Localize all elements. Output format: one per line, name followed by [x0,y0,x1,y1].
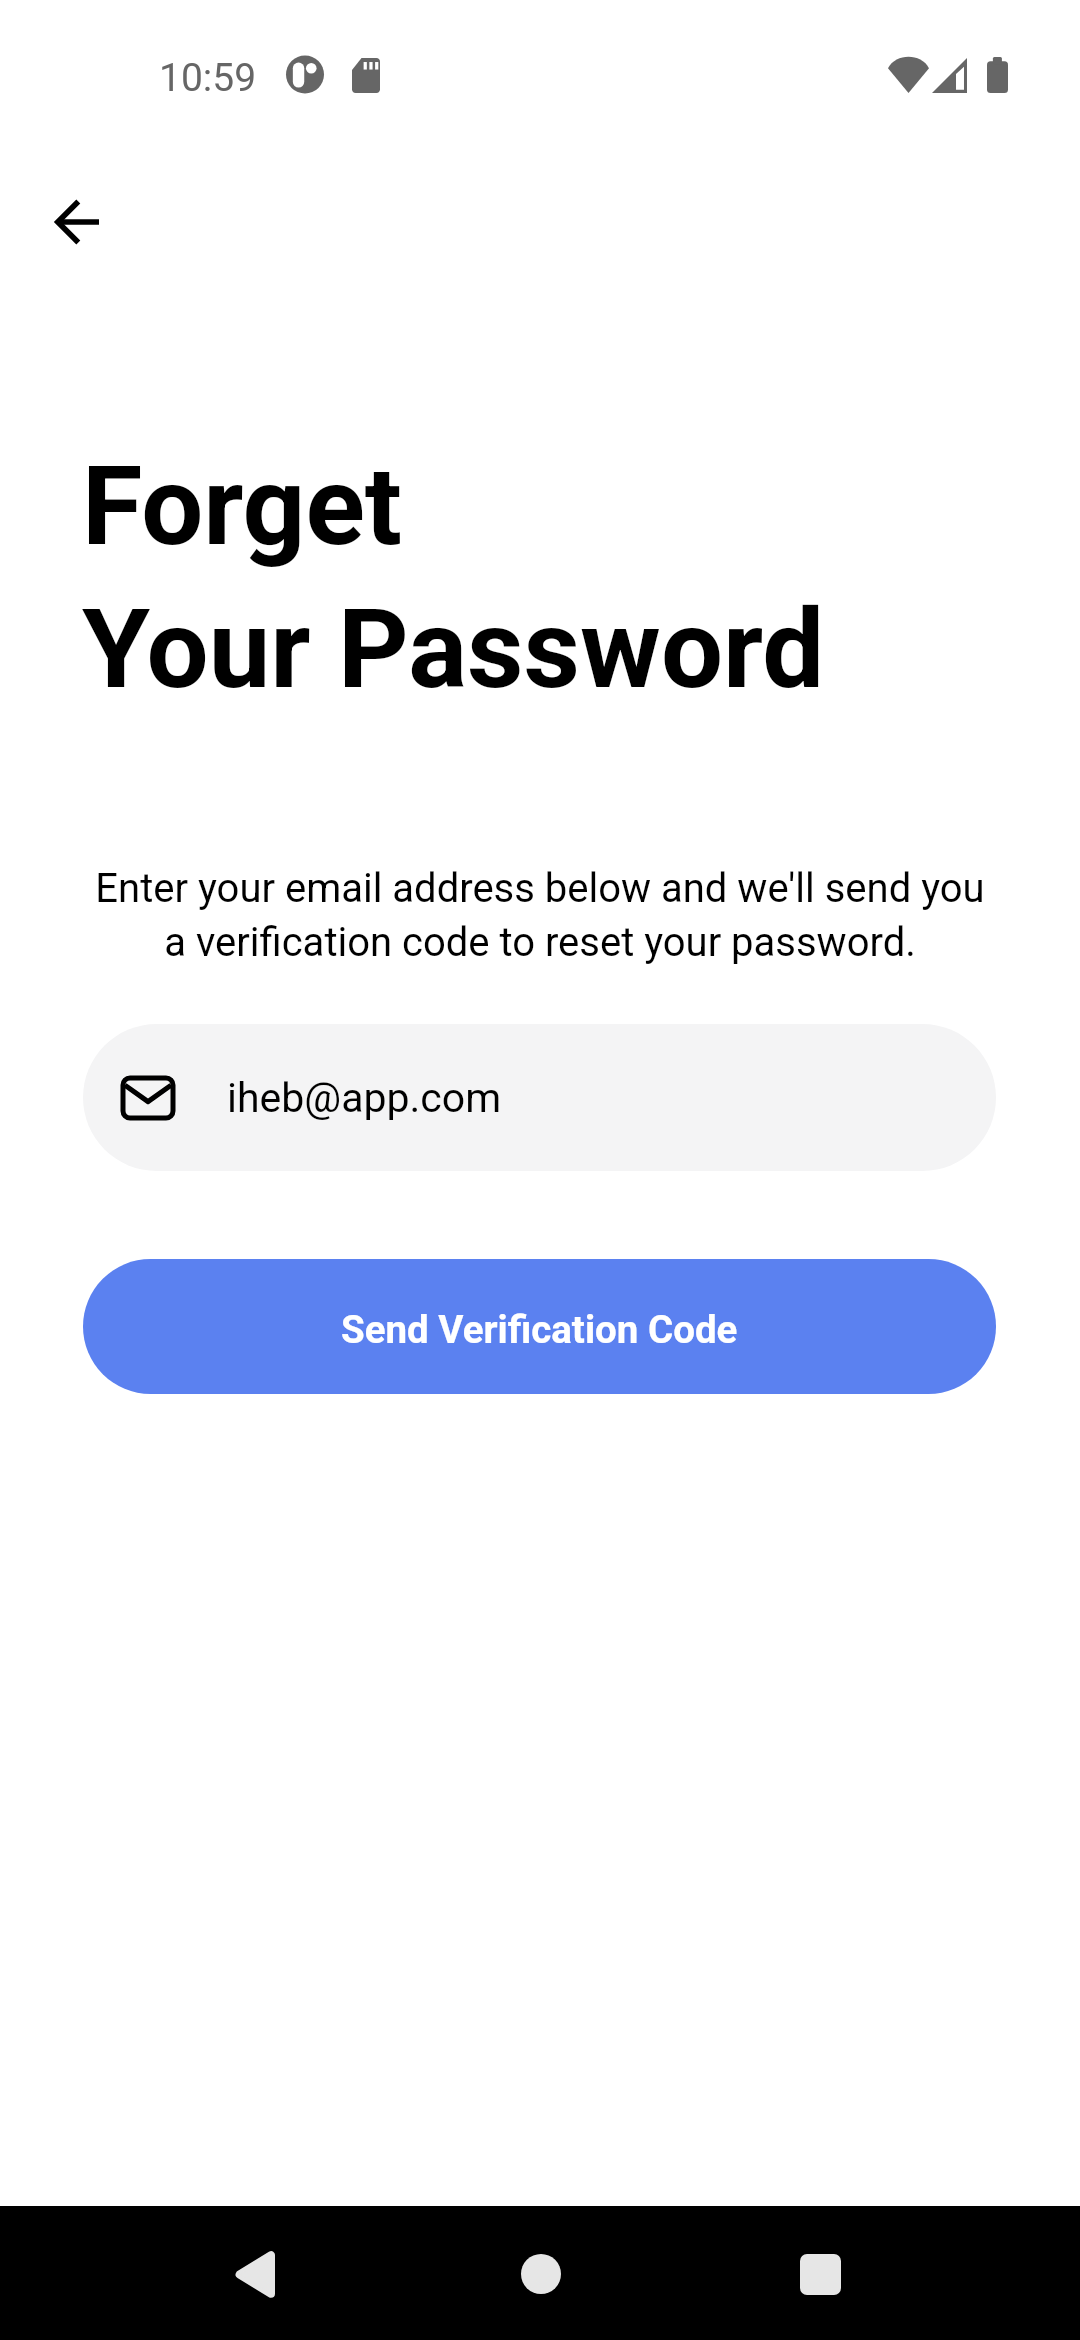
staticText: Enter your email address below and we'll… [88,865,992,966]
staticText: iheb@app.com [227,1074,502,1122]
button[interactable]: Back [189,2206,322,2340]
button[interactable]: Home [474,2206,607,2340]
button[interactable]: iheb@app.com [83,1024,996,1171]
button[interactable]: Recent apps [754,2206,887,2340]
staticText: Forget Your Password [82,442,825,714]
button[interactable]: Back [44,189,110,255]
button[interactable]: Send Verification Code [83,1259,996,1394]
staticText: Send Verification Code [341,1307,738,1352]
staticText: 10:59 [159,55,257,101]
